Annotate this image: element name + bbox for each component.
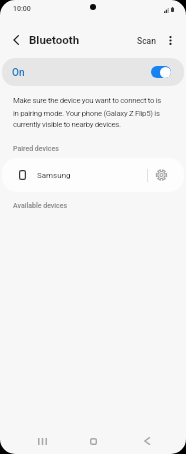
staticText: Samsung bbox=[37, 171, 71, 180]
staticText: Make sure the device you want to connect… bbox=[13, 96, 162, 105]
staticText: On bbox=[12, 67, 25, 79]
button[interactable]: Back bbox=[135, 429, 159, 453]
button[interactable]: More options bbox=[162, 32, 178, 48]
staticText: Available devices bbox=[13, 202, 68, 210]
staticText: Scan bbox=[137, 36, 156, 46]
staticText: Paired devices bbox=[13, 145, 59, 153]
button[interactable]: Recent apps bbox=[30, 429, 54, 453]
button[interactable]: Home bbox=[81, 429, 105, 453]
button[interactable]: On bbox=[2, 58, 184, 86]
staticText: Bluetooth bbox=[29, 33, 80, 46]
staticText: 10:00 bbox=[13, 5, 31, 13]
button[interactable]: Scan bbox=[134, 33, 159, 49]
button[interactable]: Samsung bbox=[2, 158, 147, 192]
button[interactable]: Navigate up bbox=[6, 30, 26, 50]
staticText: in pairing mode. Your phone (Galaxy Z Fl… bbox=[13, 109, 160, 118]
staticText: currently visible to nearby devices. bbox=[13, 120, 121, 129]
button[interactable]: Device settings bbox=[148, 158, 184, 192]
